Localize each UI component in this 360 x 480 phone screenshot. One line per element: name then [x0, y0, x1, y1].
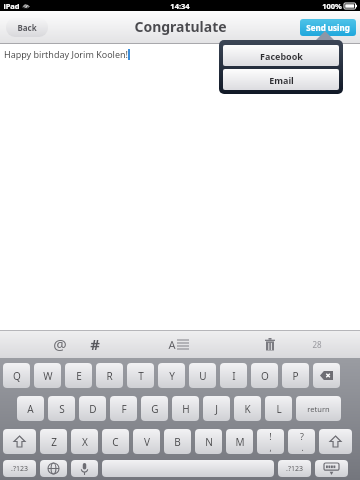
- staticText: 14:34: [170, 1, 190, 11]
- button[interactable]: F: [110, 396, 137, 421]
- button[interactable]: Mention: [47, 331, 73, 357]
- staticText: P: [292, 369, 299, 383]
- staticText: 100%: [322, 1, 342, 11]
- button[interactable]: K: [234, 396, 261, 421]
- staticText: B: [174, 435, 181, 449]
- staticText: O: [261, 369, 269, 383]
- staticText: ,: [269, 442, 272, 453]
- button[interactable]: Back: [6, 18, 48, 37]
- button[interactable]: W: [34, 363, 61, 388]
- button[interactable]: Hashtag: [82, 331, 108, 357]
- staticText: ?: [300, 430, 304, 442]
- staticText: S: [59, 402, 65, 416]
- button[interactable]: S: [48, 396, 75, 421]
- staticText: Q: [13, 369, 21, 383]
- button[interactable]: Hide keyboard: [315, 460, 348, 477]
- button[interactable]: P: [282, 363, 309, 388]
- staticText: W: [43, 369, 53, 383]
- staticText: return: [307, 404, 330, 414]
- staticText: .?123: [11, 464, 28, 474]
- staticText: X: [82, 435, 88, 449]
- button[interactable]: Y: [158, 363, 185, 388]
- button[interactable]: Question: [288, 429, 315, 454]
- button[interactable]: A: [17, 396, 44, 421]
- button[interactable]: Z: [40, 429, 67, 454]
- staticText: G: [151, 402, 159, 416]
- button[interactable]: R: [96, 363, 123, 388]
- button[interactable]: U: [189, 363, 216, 388]
- staticText: .: [301, 442, 304, 453]
- button[interactable]: .?123: [3, 460, 36, 477]
- button[interactable]: .?123: [278, 460, 311, 477]
- button[interactable]: G: [141, 396, 168, 421]
- button[interactable]: M: [226, 429, 253, 454]
- button[interactable]: B: [164, 429, 191, 454]
- staticText: I: [232, 369, 236, 383]
- button[interactable]: Email: [223, 69, 339, 90]
- staticText: A: [168, 337, 176, 352]
- staticText: U: [199, 369, 207, 383]
- staticText: E: [76, 369, 82, 383]
- staticText: Back: [17, 22, 37, 33]
- button[interactable]: J: [203, 396, 230, 421]
- button[interactable]: C: [102, 429, 129, 454]
- staticText: #: [90, 334, 100, 354]
- staticText: Y: [169, 369, 175, 383]
- button[interactable]: T: [127, 363, 154, 388]
- staticText: L: [276, 402, 282, 416]
- button[interactable]: E: [65, 363, 92, 388]
- staticText: .?123: [286, 464, 303, 474]
- button[interactable]: D: [79, 396, 106, 421]
- button[interactable]: Space: [102, 460, 274, 477]
- staticText: A: [27, 402, 34, 416]
- staticText: D: [89, 402, 97, 416]
- button[interactable]: Shift: [3, 429, 36, 454]
- button[interactable]: Backspace: [313, 363, 340, 388]
- staticText: T: [138, 369, 144, 383]
- button[interactable]: Q: [3, 363, 30, 388]
- button[interactable]: L: [265, 396, 292, 421]
- staticText: @: [53, 334, 67, 354]
- button[interactable]: N: [195, 429, 222, 454]
- button[interactable]: Text format: [161, 331, 195, 357]
- button[interactable]: Delete: [257, 331, 283, 357]
- button[interactable]: Send using: [300, 19, 356, 36]
- button[interactable]: Shift: [319, 429, 352, 454]
- button[interactable]: V: [133, 429, 160, 454]
- staticText: K: [244, 402, 251, 416]
- staticText: Congratulate: [134, 17, 227, 36]
- button[interactable]: I: [220, 363, 247, 388]
- button[interactable]: Language: [40, 460, 67, 477]
- staticText: F: [121, 402, 127, 416]
- staticText: Facebook: [260, 50, 303, 62]
- staticText: iPad: [3, 1, 20, 11]
- button[interactable]: Dictate: [71, 460, 98, 477]
- staticText: V: [144, 435, 150, 449]
- staticText: H: [182, 402, 190, 416]
- button[interactable]: O: [251, 363, 278, 388]
- button[interactable]: Exclamation: [257, 429, 284, 454]
- button[interactable]: X: [71, 429, 98, 454]
- staticText: C: [112, 435, 119, 449]
- button[interactable]: H: [172, 396, 199, 421]
- staticText: 28: [312, 339, 322, 350]
- staticText: M: [235, 435, 245, 449]
- staticText: Send using: [306, 22, 350, 33]
- staticText: Happy birthday Jorim Koolen!: [4, 48, 128, 60]
- staticText: !: [269, 430, 272, 442]
- staticText: Z: [51, 435, 57, 449]
- staticText: J: [215, 402, 218, 416]
- staticText: R: [106, 369, 113, 383]
- button[interactable]: return: [296, 396, 341, 421]
- staticText: Email: [269, 74, 294, 86]
- button[interactable]: Facebook: [223, 45, 339, 66]
- staticText: N: [205, 435, 213, 449]
